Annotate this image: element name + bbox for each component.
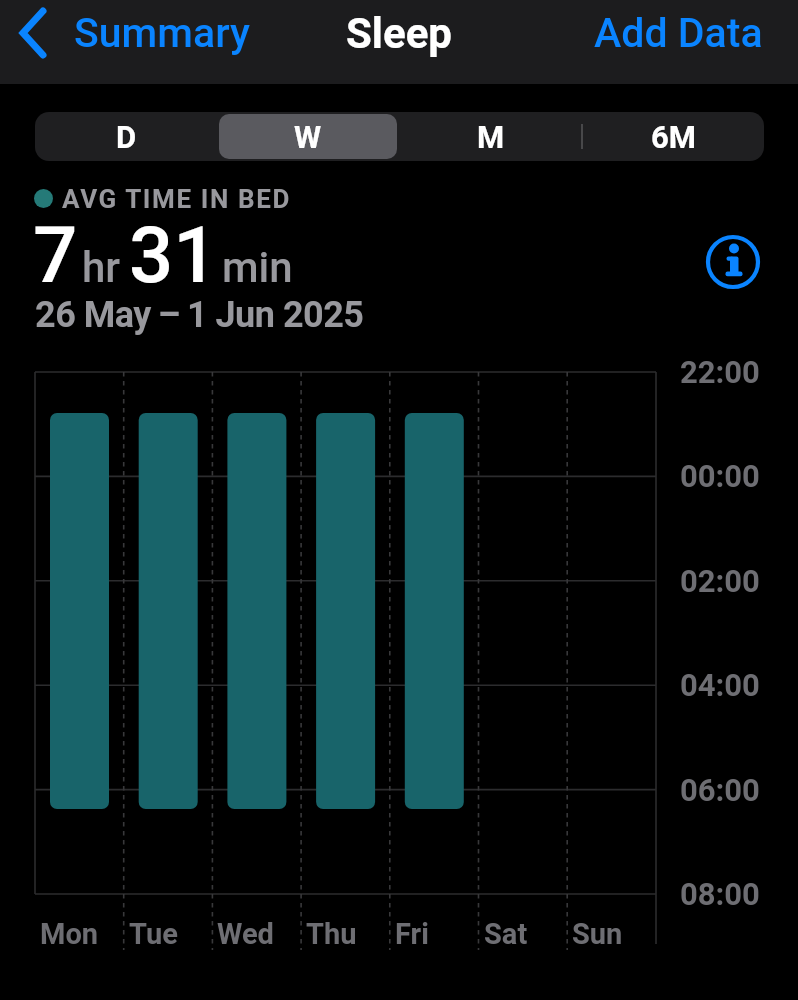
staticText: min	[222, 243, 293, 292]
staticText: D	[116, 119, 137, 155]
staticText: 22:00	[680, 354, 760, 390]
staticText: hr	[82, 243, 121, 292]
staticText: Summary	[74, 9, 250, 57]
button[interactable]: Summary	[18, 3, 250, 63]
button[interactable]	[706, 235, 760, 289]
button[interactable]: W	[217, 112, 399, 161]
staticText: Sat	[484, 917, 528, 951]
staticText: 02:00	[680, 563, 760, 599]
staticText: 31	[129, 210, 218, 301]
staticText: Mon	[40, 917, 99, 951]
staticText: 26 May – 1 Jun 2025	[35, 294, 364, 336]
button[interactable]: 6M	[582, 112, 764, 161]
button[interactable]: M	[400, 112, 582, 161]
staticText: Thu	[306, 917, 357, 951]
staticText: W	[294, 119, 322, 155]
staticText: Sun	[572, 917, 623, 951]
staticText: Tue	[129, 917, 178, 951]
staticText: 00:00	[680, 458, 760, 494]
button[interactable]: D	[35, 112, 217, 161]
staticText: Add Data	[594, 9, 763, 57]
staticText: 7	[33, 210, 78, 301]
staticText: AVG TIME IN BED	[62, 184, 291, 214]
staticText: 06:00	[680, 772, 760, 808]
staticText: Wed	[217, 917, 274, 951]
staticText: 04:00	[680, 667, 760, 703]
staticText: 6M	[651, 119, 696, 155]
staticText: 08:00	[680, 876, 760, 912]
staticText: M	[477, 119, 505, 155]
button[interactable]: Add Data	[563, 3, 763, 63]
staticText: Fri	[395, 917, 429, 951]
staticText: Sleep	[346, 9, 453, 58]
